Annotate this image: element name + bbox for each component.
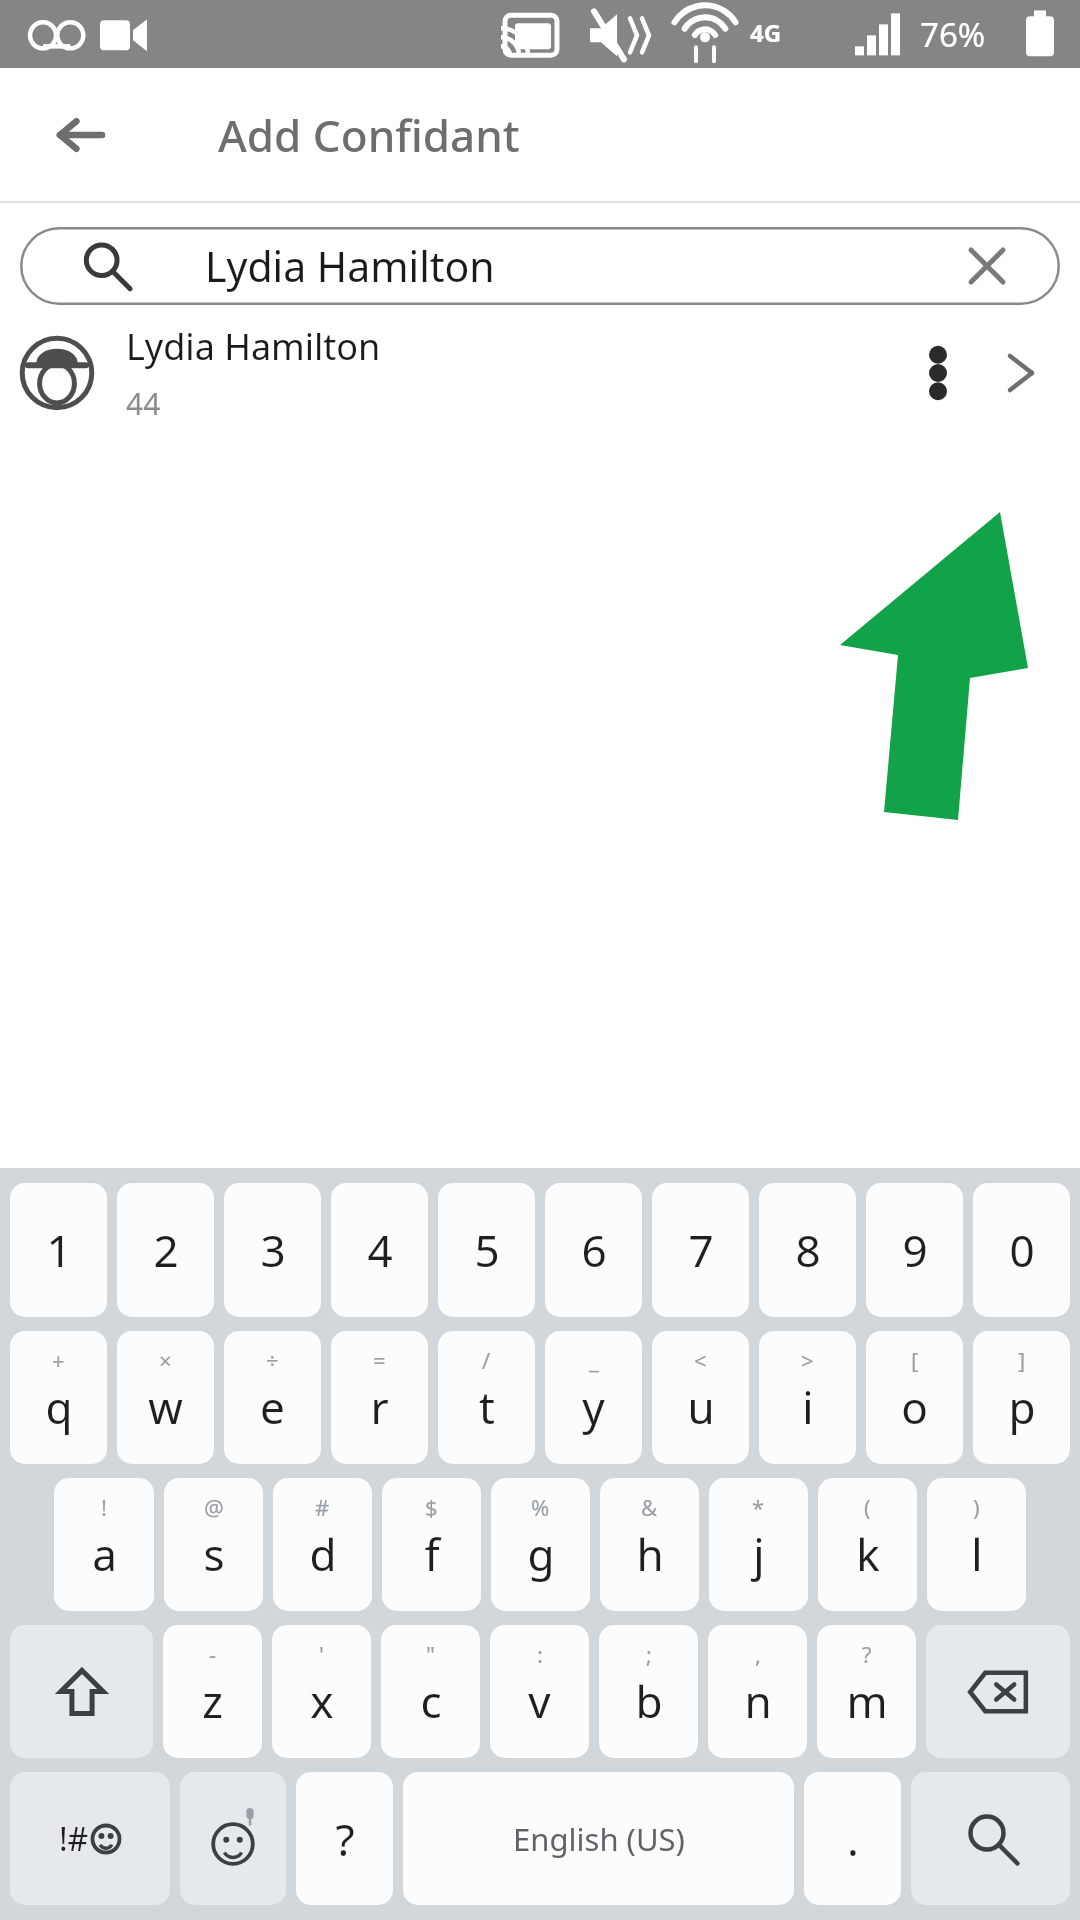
button[interactable]: Shift <box>10 1625 153 1758</box>
staticText: d <box>309 1524 337 1584</box>
button[interactable]: 7 <box>652 1183 749 1317</box>
button[interactable]: ' <box>272 1625 371 1758</box>
staticText: t <box>479 1377 495 1437</box>
staticText: ( <box>864 1492 871 1522</box>
button[interactable]: < <box>652 1331 749 1464</box>
button[interactable]: _ <box>545 1331 642 1464</box>
staticText: y <box>582 1377 605 1437</box>
button[interactable]: Emoji <box>180 1772 286 1905</box>
staticText: $ <box>425 1492 438 1522</box>
staticText: 4 <box>367 1220 393 1280</box>
button[interactable]: 1 <box>10 1183 107 1317</box>
button[interactable]: 0 <box>973 1183 1070 1317</box>
staticText: _ <box>589 1345 599 1375</box>
staticText: 2 <box>153 1220 179 1280</box>
button[interactable]: > <box>759 1331 856 1464</box>
staticText: m <box>846 1671 888 1731</box>
staticText: ; <box>646 1639 652 1669</box>
button[interactable]: ÷ <box>224 1331 321 1464</box>
staticText: ! <box>101 1492 107 1522</box>
button[interactable]: English (US) <box>403 1772 794 1905</box>
button[interactable]: / <box>438 1331 535 1464</box>
button[interactable]: ? <box>817 1625 916 1758</box>
button[interactable]: & <box>600 1478 699 1611</box>
staticText: 3 <box>260 1220 286 1280</box>
staticText: c <box>420 1671 442 1731</box>
staticText: f <box>424 1524 440 1584</box>
staticText: @ <box>204 1492 224 1522</box>
button[interactable]: 2 <box>117 1183 214 1317</box>
staticText: k <box>856 1524 880 1584</box>
staticText: Lydia Hamilton <box>126 322 381 371</box>
staticText: h <box>636 1524 664 1584</box>
button[interactable]: Search <box>911 1772 1070 1905</box>
staticText: i <box>802 1377 814 1437</box>
staticText: + <box>52 1345 65 1375</box>
button[interactable]: Symbols <box>10 1772 170 1905</box>
button[interactable]: , <box>708 1625 807 1758</box>
button[interactable]: Clear search <box>958 237 1016 295</box>
staticText: 4G <box>750 16 782 49</box>
button[interactable]: + <box>10 1331 107 1464</box>
staticText: 76% <box>920 12 986 57</box>
staticText: g <box>527 1524 555 1584</box>
staticText: ? <box>862 1639 872 1669</box>
button[interactable]: @ <box>164 1478 263 1611</box>
button[interactable]: * <box>709 1478 808 1611</box>
staticText: < <box>694 1345 707 1375</box>
button[interactable]: ( <box>818 1478 917 1611</box>
button[interactable]: 4 <box>331 1183 428 1317</box>
staticText: e <box>260 1377 285 1437</box>
button[interactable]: ! <box>54 1478 154 1611</box>
staticText: ÷ <box>266 1345 279 1375</box>
button[interactable]: × <box>117 1331 214 1464</box>
staticText: a <box>92 1524 117 1584</box>
staticText: * <box>752 1492 765 1522</box>
button[interactable]: ; <box>599 1625 698 1758</box>
button[interactable]: : <box>490 1625 589 1758</box>
button[interactable]: 9 <box>866 1183 963 1317</box>
button[interactable]: ) <box>927 1478 1026 1611</box>
button[interactable]: Backspace <box>926 1625 1070 1758</box>
button[interactable]: 5 <box>438 1183 535 1317</box>
staticText: z <box>202 1671 223 1731</box>
button[interactable]: 8 <box>759 1183 856 1317</box>
button[interactable]: 3 <box>224 1183 321 1317</box>
staticText: o <box>901 1377 928 1437</box>
button[interactable]: More options <box>900 335 976 411</box>
button[interactable]: " <box>381 1625 480 1758</box>
staticText: & <box>641 1492 658 1522</box>
staticText: 5 <box>474 1220 500 1280</box>
button[interactable]: % <box>491 1478 590 1611</box>
button[interactable]: 6 <box>545 1183 642 1317</box>
staticText: w <box>148 1377 183 1437</box>
staticText: b <box>635 1671 663 1731</box>
button[interactable]: ? <box>296 1772 393 1905</box>
button[interactable]: = <box>331 1331 428 1464</box>
staticText: j <box>753 1524 765 1584</box>
staticText: ] <box>1018 1345 1026 1375</box>
button[interactable]: ] <box>973 1331 1070 1464</box>
staticText: x <box>310 1671 334 1731</box>
button[interactable]: . <box>804 1772 901 1905</box>
staticText: Lydia Hamilton <box>205 238 495 294</box>
staticText: n <box>744 1671 772 1731</box>
staticText: 6 <box>581 1220 607 1280</box>
button[interactable]: # <box>273 1478 372 1611</box>
staticText: 9 <box>902 1220 928 1280</box>
button[interactable]: $ <box>382 1478 481 1611</box>
button[interactable]: Lydia Hamilton <box>0 317 1080 429</box>
staticText: × <box>159 1345 172 1375</box>
staticText: . <box>847 1809 859 1869</box>
button[interactable]: Back <box>48 102 114 168</box>
staticText: !# <box>59 1817 89 1861</box>
button[interactable]: - <box>163 1625 262 1758</box>
button[interactable]: Open contact <box>986 338 1056 408</box>
button[interactable]: [ <box>866 1331 963 1464</box>
button[interactable]: Lydia Hamilton <box>20 227 1060 305</box>
staticText: Add Confidant <box>218 105 520 165</box>
staticText: = <box>373 1345 386 1375</box>
staticText: , <box>755 1639 761 1669</box>
staticText: " <box>426 1639 435 1669</box>
staticText: : <box>537 1639 543 1669</box>
